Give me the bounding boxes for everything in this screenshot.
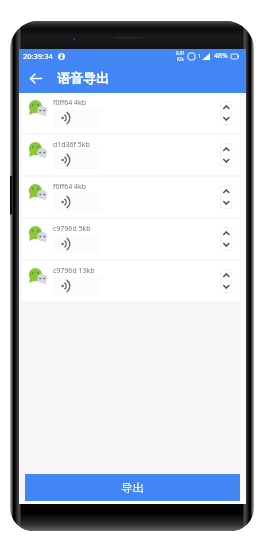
staticText: d1d36f 5kb — [53, 140, 90, 150]
staticText: 0.01 — [176, 50, 185, 56]
staticText: 1 — [198, 53, 201, 60]
button[interactable]: f0ff64 4kb — [22, 93, 240, 133]
button[interactable]: c9796d 5kb — [22, 219, 240, 259]
staticText: f0ff64 4kb — [53, 98, 87, 108]
button[interactable]: Adjust order — [218, 99, 234, 127]
button[interactable]: Adjust order — [218, 141, 234, 169]
button[interactable]: Adjust order — [218, 225, 234, 253]
button[interactable]: 导出 — [25, 474, 240, 501]
button[interactable]: f0ff64 4kb — [22, 177, 240, 217]
staticText: f0ff64 4kb — [53, 182, 87, 192]
button[interactable]: Back — [28, 71, 43, 86]
button[interactable]: d1d36f 5kb — [22, 135, 240, 175]
staticText: c9796d 5kb — [53, 224, 91, 234]
staticText: c9796d 13kb — [53, 266, 95, 276]
staticText: 导出 — [121, 481, 144, 495]
staticText: 语音导出 — [57, 70, 109, 86]
staticText: 20:39:34 — [23, 51, 53, 61]
staticText: 48% — [214, 51, 228, 61]
button[interactable]: Adjust order — [218, 267, 234, 295]
button[interactable]: Adjust order — [218, 183, 234, 211]
staticText: K/s — [177, 56, 184, 62]
button[interactable]: c9796d 13kb — [22, 261, 240, 301]
